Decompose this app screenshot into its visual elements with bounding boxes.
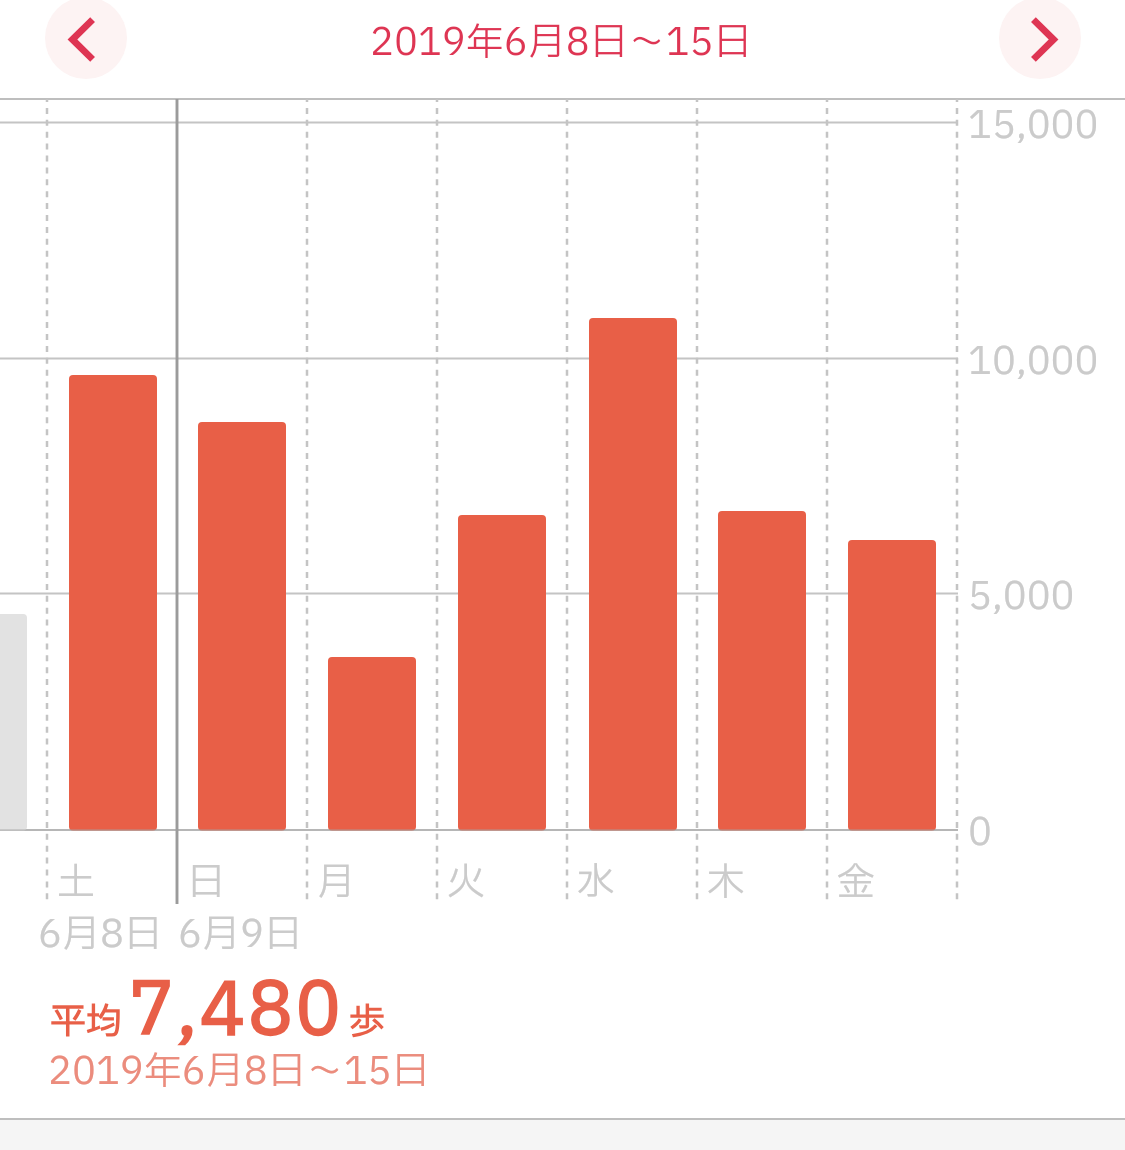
button[interactable]: 歩数グラフ [0, 99, 1125, 909]
staticText: 6月9日 [178, 907, 302, 964]
staticText: 2019年6月8日〜15日 [370, 15, 752, 72]
staticText: 土 [57, 855, 96, 912]
staticText: 歩 [349, 996, 386, 1050]
staticText: 10,000 [968, 334, 1099, 391]
staticText: 7,480 [129, 958, 344, 1066]
staticText: 月 [317, 855, 356, 912]
staticText: 水 [577, 855, 616, 912]
staticText: 木 [707, 855, 746, 912]
button[interactable]: 次の週 [999, 0, 1081, 79]
staticText: 平均 [50, 996, 123, 1050]
staticText: 0 [968, 805, 992, 862]
staticText: 6月8日 [38, 907, 162, 964]
staticText: 金 [837, 855, 876, 912]
staticText: 5,000 [968, 569, 1075, 626]
staticText: 15,000 [968, 98, 1099, 155]
staticText: 2019年6月8日〜15日 [48, 1044, 430, 1101]
button[interactable]: 前の週 [45, 0, 127, 79]
staticText: 日 [187, 855, 226, 912]
staticText: 火 [447, 855, 486, 912]
